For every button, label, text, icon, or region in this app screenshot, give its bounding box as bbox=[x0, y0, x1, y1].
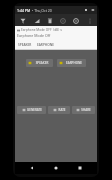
button[interactable]: EARPHONE ON bbox=[57, 59, 86, 67]
button[interactable]: Back bbox=[25, 162, 39, 174]
button[interactable]: RATE bbox=[48, 106, 70, 114]
button[interactable]: SPEAKER ON bbox=[26, 59, 53, 67]
staticText: SPEAKER bbox=[18, 43, 32, 47]
staticText: EARPHONE bbox=[37, 43, 54, 47]
staticText: 1:44 PM bbox=[17, 8, 31, 13]
staticText: Earphone Mode OFF (dB) ∨ bbox=[21, 28, 63, 32]
button[interactable]: SPEAKER bbox=[18, 43, 32, 47]
button[interactable]: Recents bbox=[73, 162, 87, 174]
staticText: SHARE bbox=[81, 108, 91, 112]
staticText: GENERATE bbox=[27, 108, 42, 112]
button[interactable]: EARPHONE bbox=[37, 43, 54, 47]
button[interactable]: SHARE bbox=[72, 106, 95, 114]
button[interactable]: Delete bbox=[44, 15, 55, 26]
staticText: • Thu,Oct 20 bbox=[32, 8, 52, 13]
button[interactable]: Signal bbox=[31, 15, 42, 26]
button[interactable]: Sync bbox=[57, 15, 68, 26]
button[interactable]: Filter bbox=[17, 15, 28, 26]
button[interactable]: More bbox=[84, 15, 95, 26]
staticText: SPEAKER ON bbox=[33, 61, 51, 65]
staticText: RATE bbox=[58, 108, 66, 112]
button[interactable]: GENERATE bbox=[17, 106, 46, 114]
button[interactable]: Settings bbox=[70, 15, 81, 26]
staticText: EARPHONE ON bbox=[64, 61, 84, 65]
button[interactable]: Home bbox=[49, 162, 63, 174]
staticText: Earphone Mode Off bbox=[17, 33, 51, 38]
